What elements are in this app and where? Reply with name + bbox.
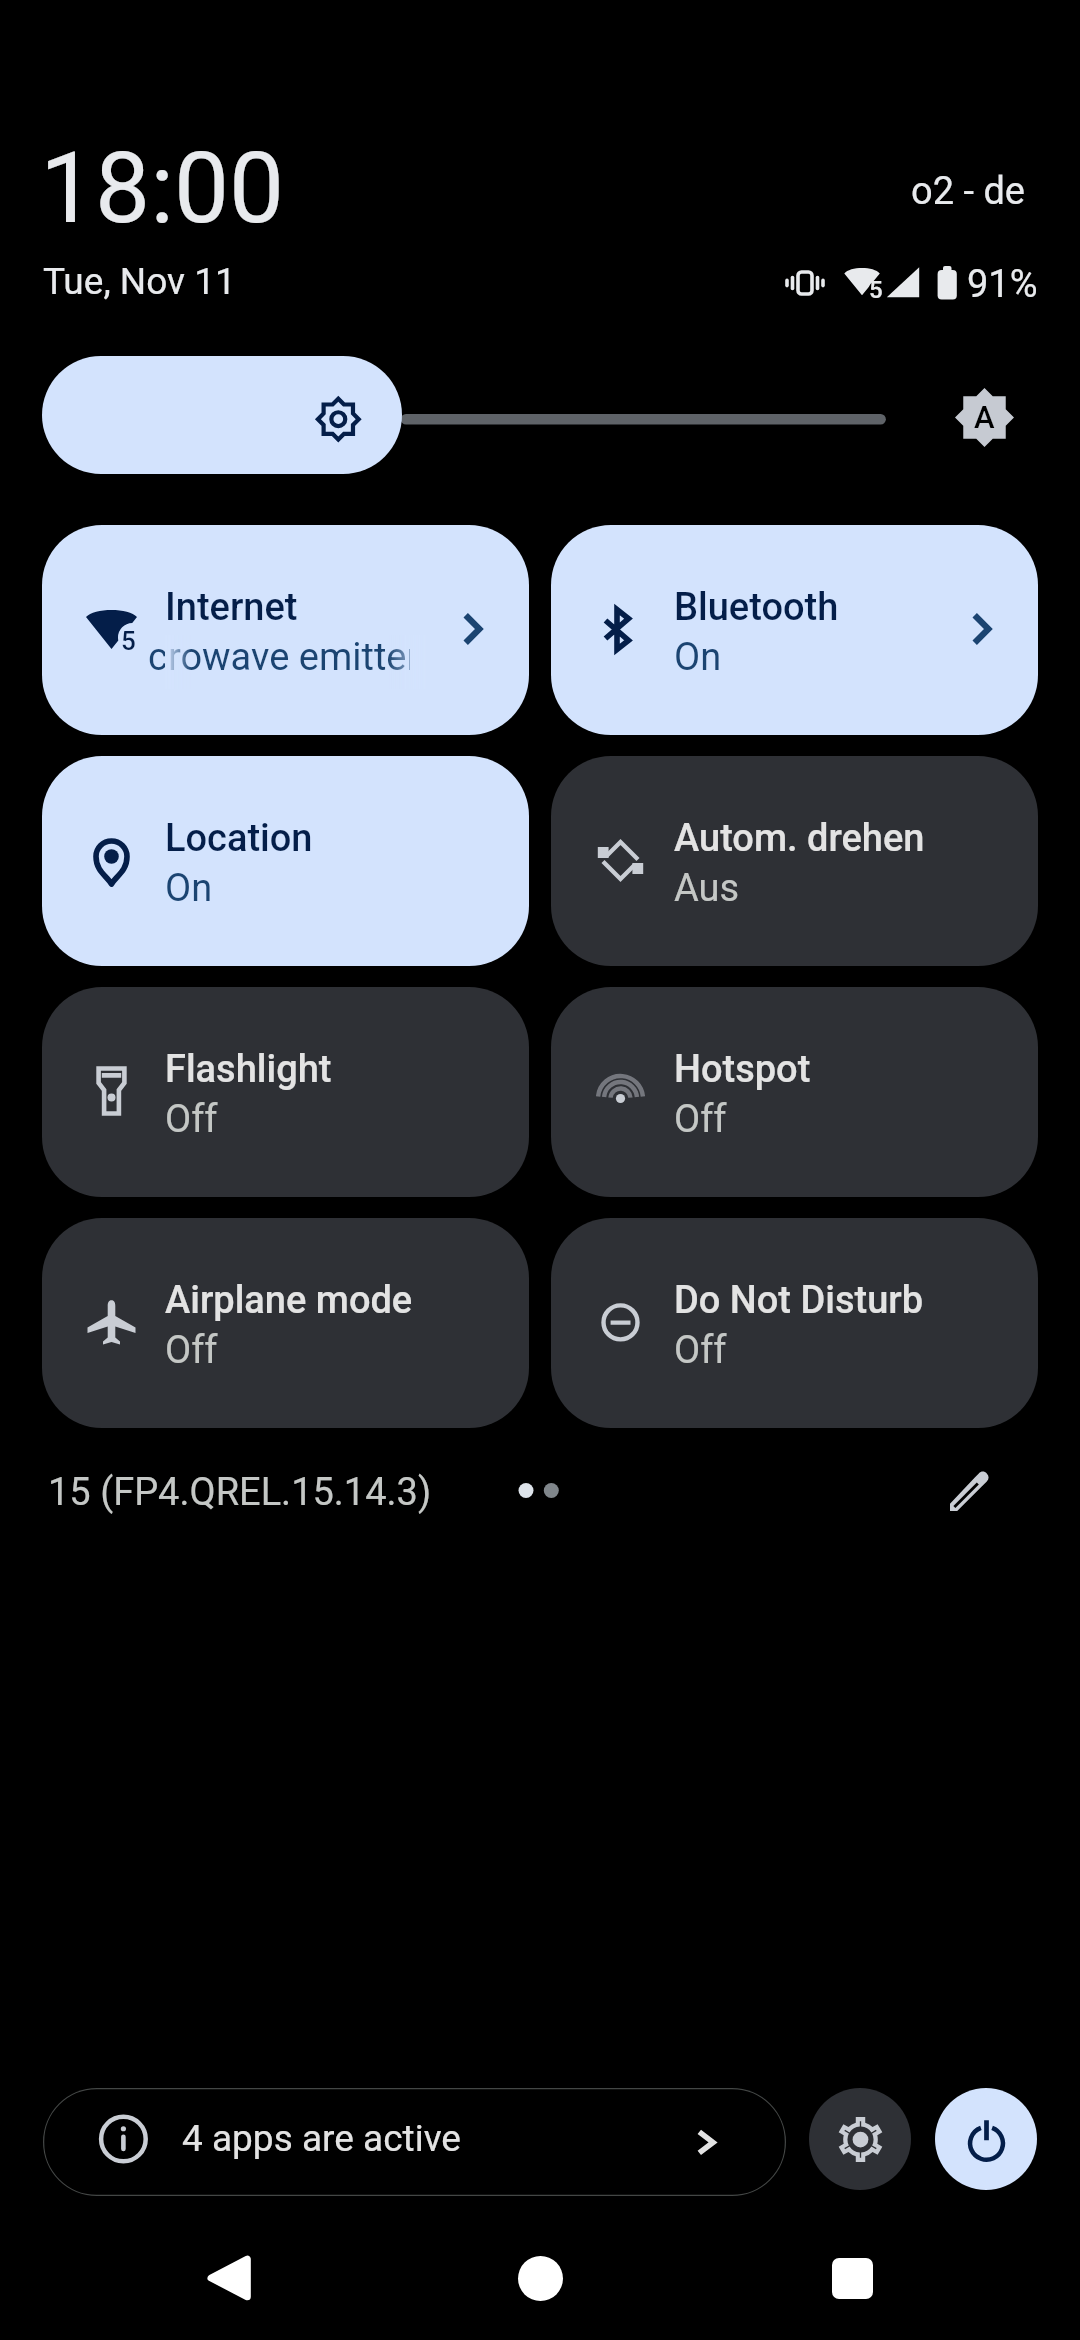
staticText: crowave emitter [148, 635, 410, 680]
staticText: Flashlight [165, 1047, 332, 1092]
staticText: Hotspot [674, 1047, 811, 1092]
button[interactable]: Settings [809, 2088, 911, 2190]
staticText: Bluetooth [674, 585, 839, 630]
staticText: Off [674, 1097, 727, 1142]
staticText: On [165, 866, 213, 911]
staticText: Off [674, 1328, 727, 1373]
staticText: Location [165, 816, 313, 861]
staticText: 15 (FP4.QREL.15.14.3) [48, 1470, 432, 1515]
button[interactable]: Edit tiles [936, 1457, 1004, 1525]
button[interactable]: Location [42, 756, 529, 966]
staticText: o2 - de [911, 169, 1025, 214]
button[interactable]: 5 [42, 525, 529, 735]
button[interactable]: 4 apps are active [43, 2088, 786, 2196]
button[interactable]: Power [935, 2088, 1037, 2190]
button[interactable]: Back [168, 2218, 288, 2338]
button[interactable]: Flashlight [42, 987, 529, 1197]
staticText: Airplane mode [165, 1278, 413, 1323]
button[interactable]: Home [480, 2218, 600, 2338]
button[interactable]: Do Not Disturb [551, 1218, 1038, 1428]
staticText: Internet [165, 585, 298, 630]
button[interactable]: Auto brightness [955, 388, 1014, 447]
staticText: 18:00 [40, 131, 285, 246]
staticText: Autom. drehen [674, 816, 925, 861]
staticText: 91% [967, 262, 1038, 307]
button[interactable]: Hotspot [551, 987, 1038, 1197]
button[interactable]: Brightness [42, 356, 402, 474]
staticText: 4 apps are active [182, 2117, 461, 2160]
staticText: Off [165, 1097, 218, 1142]
staticText: Do Not Disturb [674, 1278, 924, 1323]
button[interactable]: Bluetooth [551, 525, 1038, 735]
button[interactable]: Autom. drehen [551, 756, 1038, 966]
button[interactable]: Airplane mode [42, 1218, 529, 1428]
staticText: On [674, 635, 722, 680]
button[interactable]: Recents [792, 2218, 912, 2338]
staticText: Tue, Nov 11 [43, 260, 236, 303]
staticText: 5 [121, 626, 136, 656]
staticText: Off [165, 1328, 218, 1373]
staticText: 5 [869, 276, 883, 304]
staticText: A [974, 399, 995, 435]
staticText: Aus [674, 866, 740, 911]
